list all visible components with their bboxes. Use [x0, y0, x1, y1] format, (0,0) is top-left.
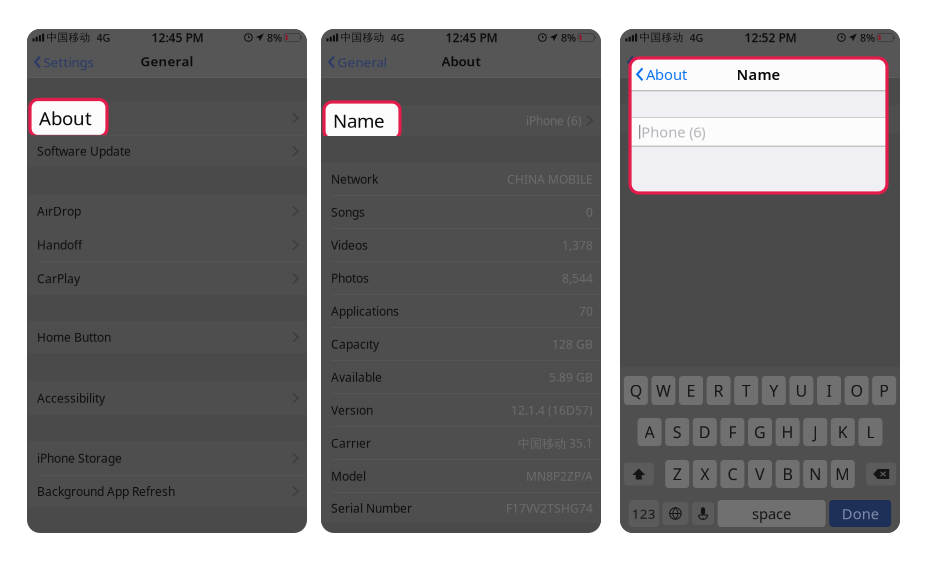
staticText: space [752, 504, 791, 523]
button[interactable]: U [789, 376, 813, 405]
button[interactable]: iPhone Storage [27, 441, 307, 475]
staticText: K [838, 421, 848, 443]
button[interactable]: J [803, 418, 827, 446]
staticText: X [700, 463, 709, 485]
staticText: 4G [690, 30, 704, 45]
button[interactable]: Dictate [692, 502, 714, 525]
button[interactable]: Accessibility [27, 381, 307, 415]
button[interactable]: Switch keyboard [662, 502, 688, 525]
button[interactable]: H [776, 418, 800, 446]
button[interactable]: Z [665, 460, 689, 488]
staticText: About [441, 52, 480, 70]
button[interactable]: V [748, 460, 772, 488]
staticText: R [714, 380, 724, 401]
button[interactable]: F [720, 418, 744, 446]
staticText: 8% [860, 30, 875, 45]
button[interactable]: O [845, 376, 869, 405]
button[interactable]: Phone (6) [630, 118, 887, 146]
button[interactable]: Version [321, 394, 601, 426]
staticText: 8% [561, 30, 576, 45]
staticText: Phone (6) [641, 122, 705, 142]
button[interactable]: 123 [629, 500, 659, 527]
button[interactable]: Delete [866, 462, 896, 485]
staticText: 8,544 [562, 270, 593, 286]
staticText: E [686, 380, 695, 401]
staticText: Q [630, 380, 642, 401]
staticText: W [656, 380, 671, 401]
staticText: Version [331, 402, 373, 418]
button[interactable] [27, 101, 307, 135]
staticText: General [337, 53, 386, 71]
staticText: Y [769, 380, 778, 401]
staticText: iPhone (6) [526, 112, 582, 128]
button[interactable]: Shift [624, 462, 654, 485]
button[interactable]: D [693, 418, 717, 446]
staticText: 中国移动 35.1 [518, 435, 593, 451]
button[interactable]: G [748, 418, 772, 446]
button[interactable]: Network [321, 163, 601, 195]
button[interactable]: Serial Number [321, 493, 601, 523]
staticText: F [728, 421, 736, 443]
button[interactable]: AirDrop [27, 195, 307, 228]
button[interactable]: Software Update [27, 136, 307, 167]
button[interactable]: W [651, 376, 675, 405]
button[interactable]: S [665, 418, 689, 446]
button[interactable]: Available [321, 361, 601, 393]
button[interactable]: About [30, 99, 107, 136]
button[interactable]: X [693, 460, 717, 488]
button[interactable]: Background App Refresh [27, 476, 307, 507]
button[interactable]: M [831, 460, 855, 488]
button[interactable]: Name [324, 102, 400, 139]
button[interactable]: I [817, 376, 841, 405]
button[interactable]: Applications [321, 295, 601, 327]
staticText: Network [331, 171, 378, 187]
button[interactable]: Photos [321, 262, 601, 294]
button[interactable]: General [321, 46, 386, 77]
button[interactable] [321, 105, 601, 136]
staticText: Settings [43, 53, 93, 71]
staticText: F17VV2TSHG74 [506, 500, 593, 516]
button[interactable]: L [858, 418, 882, 446]
button[interactable]: B [776, 460, 800, 488]
staticText: Serial Number [331, 500, 412, 516]
button[interactable]: About [630, 58, 687, 90]
button[interactable]: P [872, 376, 896, 405]
button[interactable]: Videos [321, 229, 601, 261]
button[interactable]: K [831, 418, 855, 446]
staticText: iPhone Storage [37, 450, 122, 466]
button[interactable]: Settings [27, 46, 93, 77]
button[interactable]: Songs [321, 196, 601, 228]
staticText: P [879, 380, 889, 401]
button[interactable]: Capacity [321, 328, 601, 360]
button[interactable]: R [707, 376, 731, 405]
button[interactable]: A [638, 418, 662, 446]
button[interactable]: C [720, 460, 744, 488]
button[interactable]: Done [829, 500, 891, 527]
staticText: Model [331, 468, 366, 484]
button[interactable]: T [734, 376, 758, 405]
button[interactable]: Carrier [321, 427, 601, 459]
staticText: Capacity [331, 336, 379, 352]
button[interactable]: Y [762, 376, 786, 405]
staticText: Accessibility [37, 390, 105, 406]
staticText: 1,378 [562, 237, 593, 253]
staticText: 5.89 GB [549, 369, 593, 385]
button[interactable]: Q [624, 376, 648, 405]
staticText: Home Button [37, 329, 111, 345]
staticText: About [636, 53, 674, 71]
staticText: 中国移动 [341, 31, 385, 44]
staticText: 0 [586, 204, 593, 220]
button[interactable]: CarPlay [27, 262, 307, 295]
button[interactable]: Home Button [27, 321, 307, 353]
staticText: Carrier [331, 435, 371, 451]
button[interactable]: Handoff [27, 228, 307, 261]
staticText: CarPlay [37, 271, 80, 286]
button[interactable]: About [620, 46, 674, 77]
button[interactable]: N [803, 460, 827, 488]
staticText: 123 [632, 505, 656, 522]
button[interactable]: space [718, 500, 826, 527]
staticText: 12:45 PM [151, 29, 203, 45]
staticText: G [754, 421, 766, 443]
button[interactable]: E [679, 376, 703, 405]
button[interactable]: Model [321, 460, 601, 492]
